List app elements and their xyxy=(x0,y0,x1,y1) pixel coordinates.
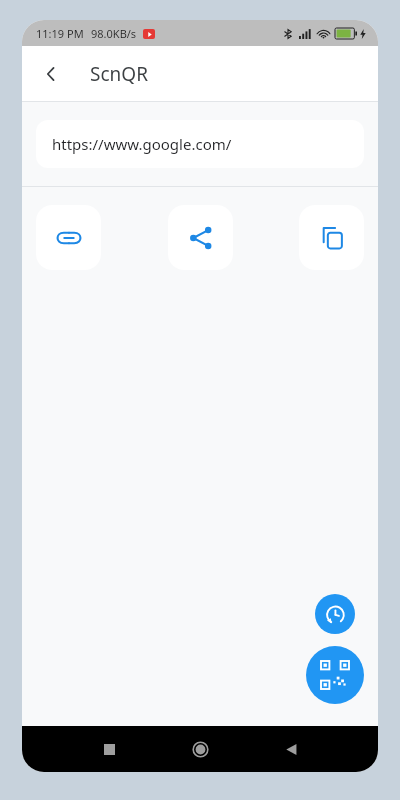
button[interactable]: Back xyxy=(274,732,308,766)
staticText: 11:19 PM xyxy=(36,26,84,41)
button[interactable]: Copy xyxy=(299,205,364,270)
button[interactable]: Open link xyxy=(36,205,101,270)
button[interactable]: Back xyxy=(30,53,72,95)
button[interactable]: Scan QR code xyxy=(306,646,364,704)
button[interactable]: Share xyxy=(168,205,233,270)
button[interactable]: Home xyxy=(183,732,217,766)
button[interactable]: History xyxy=(315,594,355,634)
staticText: 98.0KB/s xyxy=(91,26,137,41)
button[interactable]: Recents xyxy=(92,732,126,766)
staticText: ScnQR xyxy=(90,61,148,87)
staticText: https://www.google.com/ xyxy=(52,134,232,154)
button[interactable]: https://www.google.com/ xyxy=(36,120,364,168)
